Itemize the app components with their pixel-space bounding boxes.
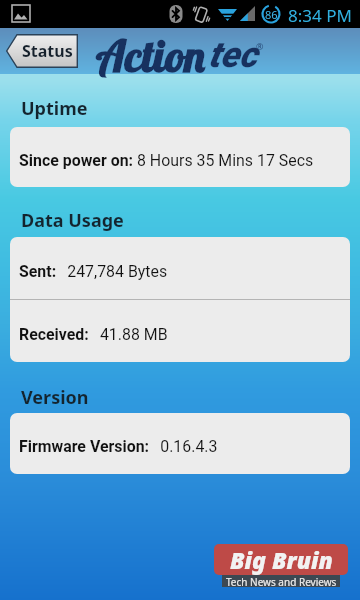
- staticText: Action: [98, 28, 208, 83]
- staticText: Status: [22, 40, 73, 62]
- staticText: Big Bruin: [230, 544, 333, 575]
- staticText: 8:34 PM: [288, 4, 352, 27]
- staticText: tec: [208, 34, 258, 76]
- other: Vibrate mode: [192, 5, 210, 23]
- button[interactable]: Sent: 247,784 Bytes: [10, 237, 350, 299]
- staticText: Tech News and Reviews: [226, 575, 337, 587]
- button[interactable]: Received: 41.88 MB: [10, 300, 350, 362]
- staticText: ®: [256, 40, 264, 52]
- other: Mobile signal: [240, 6, 255, 21]
- staticText: Sent: 247,784 Bytes: [19, 262, 168, 281]
- button[interactable]: Since power on: 8 Hours 35 Mins 17 Secs: [10, 127, 350, 187]
- staticText: 86: [265, 7, 278, 22]
- staticText: Uptime: [21, 96, 88, 121]
- button[interactable]: Status: [6, 34, 78, 68]
- staticText: Version: [21, 385, 89, 410]
- button[interactable]: Firmware Version: 0.16.4.3: [10, 413, 350, 474]
- staticText: Since power on: 8 Hours 35 Mins 17 Secs: [19, 151, 314, 170]
- staticText: Firmware Version: 0.16.4.3: [19, 437, 218, 456]
- staticText: Data Usage: [21, 208, 124, 233]
- other: Screenshot captured: [12, 5, 30, 22]
- staticText: Received: 41.88 MB: [19, 325, 168, 344]
- other: Wi-Fi connected: [218, 6, 237, 21]
- other: Bluetooth on: [169, 5, 183, 23]
